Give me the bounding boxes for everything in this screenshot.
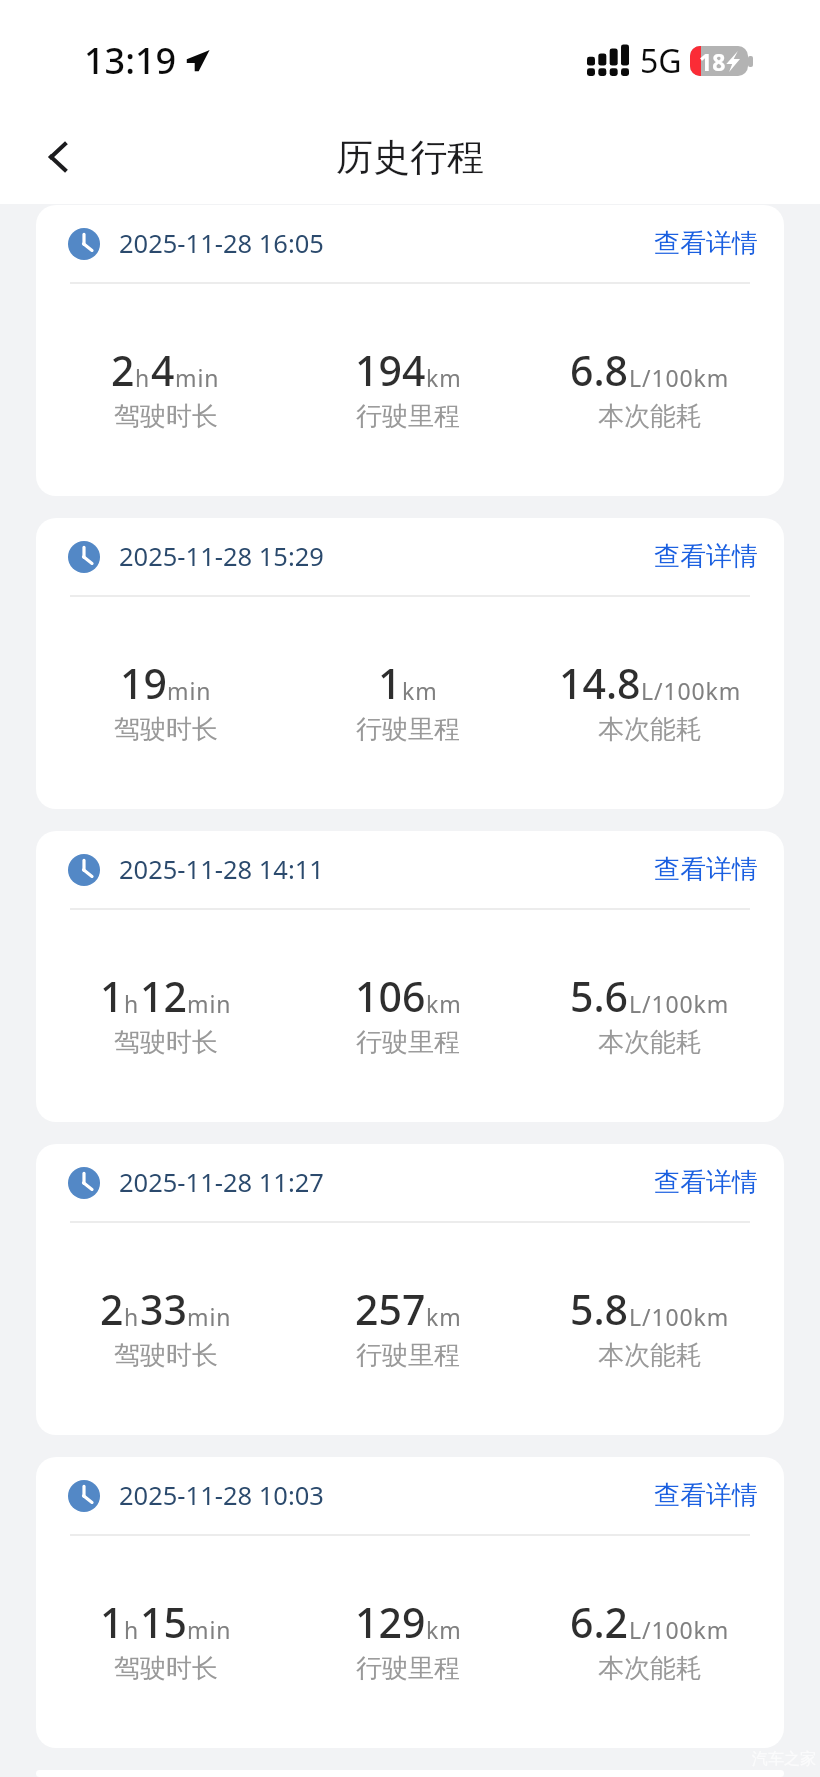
- staticText: 查看详情: [654, 1479, 758, 1512]
- staticText: 本次能耗: [598, 713, 702, 746]
- staticText: min: [187, 1301, 232, 1332]
- staticText: 2025-11-28 15:29: [119, 539, 324, 574]
- staticText: 5G: [640, 39, 682, 83]
- staticText: 13:19: [84, 36, 177, 85]
- staticText: 14.8: [559, 655, 641, 711]
- staticText: min: [187, 1614, 232, 1645]
- staticText: 2025-11-28 16:05: [119, 226, 324, 261]
- staticText: 12: [140, 968, 187, 1024]
- staticText: h: [135, 362, 151, 393]
- button[interactable]: Trip start time: [36, 205, 784, 496]
- staticText: 6.2: [570, 1594, 629, 1650]
- staticText: 驾驶时长: [114, 1026, 218, 1059]
- other: Trip start time: [68, 541, 100, 573]
- staticText: km: [426, 988, 462, 1019]
- staticText: L/100km: [629, 1301, 730, 1332]
- staticText: 行驶里程: [356, 713, 460, 746]
- staticText: 驾驶时长: [114, 713, 218, 746]
- staticText: 106: [355, 968, 426, 1024]
- staticText: 2: [100, 1281, 124, 1337]
- staticText: 查看详情: [654, 540, 758, 573]
- staticText: 1: [378, 655, 402, 711]
- other: Trip start time: [68, 854, 100, 886]
- staticText: L/100km: [629, 362, 730, 393]
- other: Trip start time: [68, 1167, 100, 1199]
- staticText: 查看详情: [654, 227, 758, 260]
- staticText: min: [175, 362, 220, 393]
- staticText: 历史行程: [336, 134, 484, 181]
- button[interactable]: Trip start time: [36, 518, 784, 809]
- staticText: 行驶里程: [356, 1026, 460, 1059]
- staticText: 1: [100, 968, 124, 1024]
- staticText: 5.6: [570, 968, 629, 1024]
- staticText: 驾驶时长: [114, 1339, 218, 1372]
- staticText: 18: [699, 46, 726, 76]
- staticText: km: [426, 362, 462, 393]
- staticText: km: [426, 1614, 462, 1645]
- button[interactable]: Trip start time: [36, 1144, 784, 1435]
- staticText: 本次能耗: [598, 1026, 702, 1059]
- staticText: 驾驶时长: [114, 1652, 218, 1685]
- staticText: 15: [140, 1594, 187, 1650]
- staticText: 本次能耗: [598, 400, 702, 433]
- staticText: 查看详情: [654, 853, 758, 886]
- button[interactable]: 查看详情: [653, 1475, 759, 1516]
- staticText: 2025-11-28 14:11: [119, 852, 324, 887]
- staticText: 2: [111, 342, 135, 398]
- button[interactable]: 查看详情: [653, 223, 759, 264]
- staticText: 257: [355, 1281, 426, 1337]
- staticText: h: [124, 1301, 140, 1332]
- staticText: 驾驶时长: [114, 400, 218, 433]
- staticText: km: [426, 1301, 462, 1332]
- button[interactable]: Back: [28, 127, 88, 187]
- other: Trip start time: [68, 1480, 100, 1512]
- button[interactable]: Trip start time: [36, 1457, 784, 1748]
- staticText: 行驶里程: [356, 1652, 460, 1685]
- staticText: h: [124, 1614, 140, 1645]
- staticText: min: [167, 675, 212, 706]
- staticText: h: [124, 988, 140, 1019]
- staticText: L/100km: [641, 675, 742, 706]
- button[interactable]: Trip start time: [36, 831, 784, 1122]
- staticText: 查看详情: [654, 1166, 758, 1199]
- staticText: 行驶里程: [356, 400, 460, 433]
- other: Trip start time: [68, 228, 100, 260]
- staticText: 本次能耗: [598, 1652, 702, 1685]
- button[interactable]: 查看详情: [653, 1162, 759, 1203]
- staticText: 194: [355, 342, 426, 398]
- staticText: 行驶里程: [356, 1339, 460, 1372]
- staticText: km: [402, 675, 438, 706]
- staticText: 129: [355, 1594, 426, 1650]
- staticText: 2025-11-28 10:03: [119, 1478, 324, 1513]
- staticText: 6.8: [570, 342, 629, 398]
- staticText: 2025-11-28 11:27: [119, 1165, 324, 1200]
- staticText: 5.8: [570, 1281, 629, 1337]
- staticText: 本次能耗: [598, 1339, 702, 1372]
- staticText: 4: [151, 342, 175, 398]
- staticText: 1: [100, 1594, 124, 1650]
- staticText: L/100km: [629, 1614, 730, 1645]
- staticText: min: [187, 988, 232, 1019]
- staticText: 33: [140, 1281, 187, 1337]
- staticText: L/100km: [629, 988, 730, 1019]
- button[interactable]: 查看详情: [653, 849, 759, 890]
- staticText: 汽车之家: [752, 1749, 816, 1769]
- staticText: 19: [120, 655, 167, 711]
- button[interactable]: 查看详情: [653, 536, 759, 577]
